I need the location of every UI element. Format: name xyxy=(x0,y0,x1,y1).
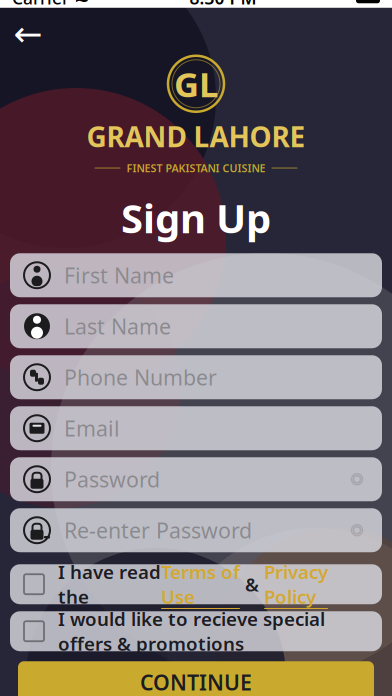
staticText: I have read the xyxy=(58,559,161,609)
staticText: & xyxy=(240,572,264,597)
button[interactable]: Re-enter Password xyxy=(10,508,382,552)
button[interactable]: CONTINUE xyxy=(18,661,374,696)
button[interactable]: Email xyxy=(10,406,382,450)
button[interactable]: Password xyxy=(10,457,382,501)
staticText: Re-enter Password xyxy=(64,516,252,544)
staticText: GL xyxy=(174,61,218,107)
staticText: Phone Number xyxy=(64,363,217,391)
staticText: GRAND LAHORE xyxy=(86,118,305,155)
staticText: First Name xyxy=(64,261,174,289)
staticText: I would like to recieve special offers &… xyxy=(58,606,325,656)
staticText: Last Name xyxy=(64,312,171,340)
staticText: ≈ xyxy=(74,0,90,8)
staticText: Password xyxy=(64,465,160,493)
button[interactable]: Back xyxy=(6,14,50,54)
staticText: Privacy Policy xyxy=(264,559,328,609)
button[interactable]: I would like to recieve special offers &… xyxy=(10,611,382,651)
staticText: CONTINUE xyxy=(140,668,252,696)
staticText: Email xyxy=(64,414,120,442)
staticText: Terms of Use xyxy=(161,559,240,609)
staticText: Carrier xyxy=(12,0,69,9)
staticText: 8:30 PM xyxy=(189,0,256,9)
button[interactable]: Last Name xyxy=(10,304,382,348)
staticText: ← xyxy=(13,14,42,53)
button[interactable]: First Name xyxy=(10,253,382,297)
staticText: FINEST PAKISTANI CUISINE xyxy=(126,161,265,175)
button[interactable]: I have read the xyxy=(10,564,382,604)
staticText: Sign Up xyxy=(121,191,271,244)
button[interactable]: Phone Number xyxy=(10,355,382,399)
